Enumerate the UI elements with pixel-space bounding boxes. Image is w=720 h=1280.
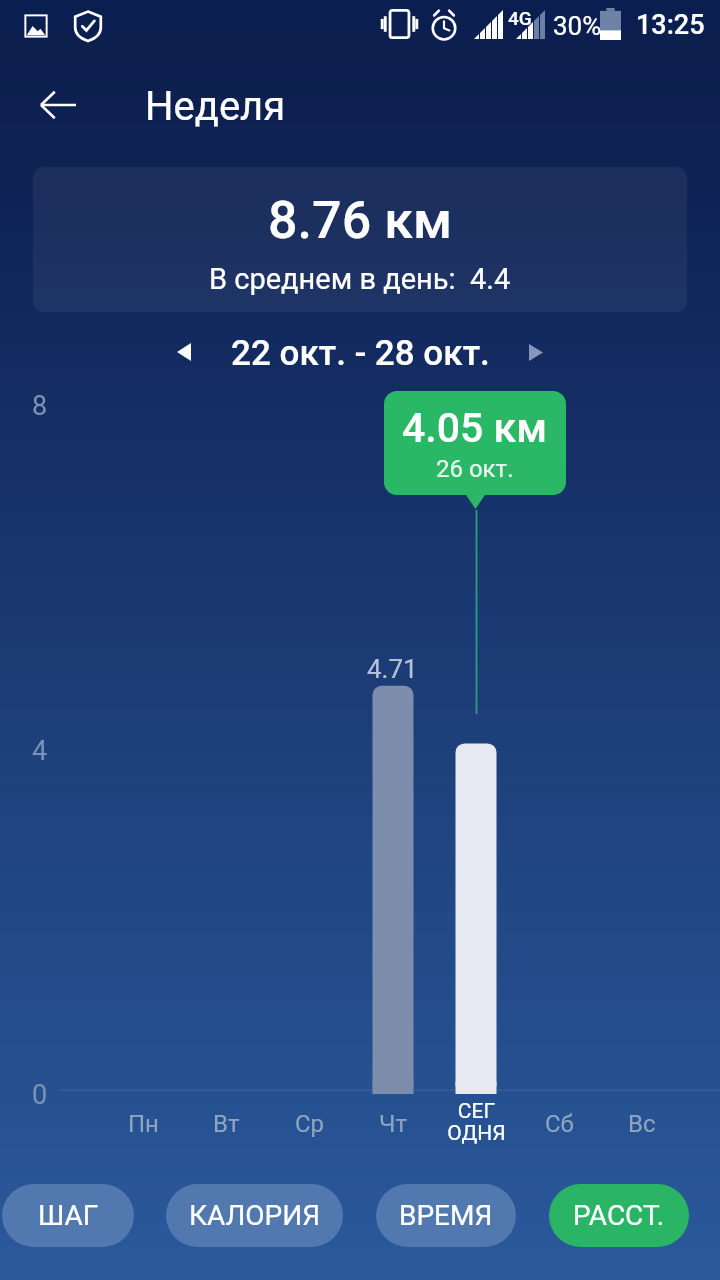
- staticText: Неделя: [145, 83, 286, 130]
- button[interactable]: КАЛОРИЯ: [166, 1184, 343, 1247]
- button[interactable]: Пн: [93, 1110, 193, 1138]
- staticText: Ср: [295, 1110, 325, 1138]
- staticText: Сб: [545, 1110, 574, 1138]
- staticText: КАЛОРИЯ: [189, 1199, 321, 1232]
- staticText: Вт: [213, 1110, 240, 1138]
- staticText: Вс: [628, 1110, 656, 1138]
- staticText: Чт: [379, 1110, 407, 1138]
- staticText: 13:25: [636, 9, 705, 41]
- button[interactable]: Чт: [343, 1110, 443, 1138]
- button[interactable]: Next week: [512, 328, 560, 376]
- button[interactable]: 8.76 км: [33, 167, 687, 312]
- staticText: РАССТ.: [573, 1199, 665, 1232]
- staticText: 8: [32, 390, 48, 422]
- staticText: В среднем в день: 4.4: [209, 262, 511, 296]
- button[interactable]: Вс: [592, 1110, 692, 1138]
- button[interactable]: ВРЕМЯ: [376, 1184, 516, 1247]
- button[interactable]: Сб: [509, 1110, 609, 1138]
- staticText: СЕГ ОДНЯ: [447, 1099, 506, 1146]
- staticText: 30%: [553, 11, 602, 41]
- button[interactable]: Previous week: [160, 328, 208, 376]
- staticText: 8.76 км: [268, 190, 453, 251]
- button[interactable]: 4.05 км: [384, 391, 566, 495]
- staticText: 22 окт. - 28 окт.: [231, 333, 490, 374]
- button[interactable]: СЕГ ОДНЯ: [426, 1099, 526, 1146]
- staticText: 4: [32, 735, 48, 767]
- staticText: ВРЕМЯ: [399, 1199, 493, 1232]
- button[interactable]: РАССТ.: [549, 1184, 689, 1247]
- staticText: 4G: [508, 7, 532, 29]
- button[interactable]: ШАГ: [2, 1184, 134, 1247]
- staticText: 4.71: [367, 654, 418, 684]
- staticText: ШАГ: [38, 1199, 99, 1232]
- staticText: 4.05 км: [402, 404, 548, 452]
- staticText: 0: [32, 1079, 48, 1111]
- button[interactable]: Ср: [260, 1110, 360, 1138]
- button[interactable]: Back: [30, 77, 86, 133]
- staticText: 26 окт.: [436, 455, 514, 483]
- button[interactable]: Вт: [176, 1110, 276, 1138]
- staticText: Пн: [128, 1110, 159, 1138]
